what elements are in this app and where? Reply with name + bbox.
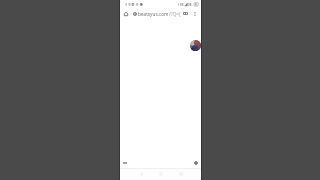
button[interactable]: More options [191,10,198,17]
button[interactable]: Account [190,40,201,51]
button[interactable]: Recent apps [176,169,186,179]
button[interactable]: Home [156,169,166,179]
button[interactable]: beatsyus.com [133,8,181,19]
button[interactable]: Switch tabs [181,9,190,18]
button[interactable]: Zoom in [192,159,200,167]
staticText: /?Q=( [169,11,181,17]
staticText: beatsyus.com [138,11,169,17]
button[interactable]: Home [121,9,130,18]
button[interactable]: Zoom out [121,159,129,167]
